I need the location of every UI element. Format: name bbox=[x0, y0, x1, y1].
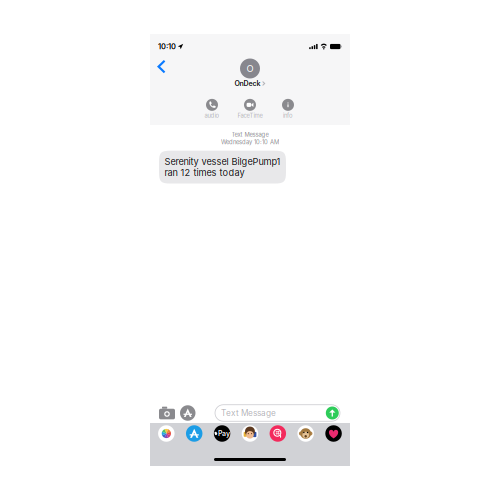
button[interactable]: Back bbox=[150, 51, 174, 82]
staticText: info bbox=[283, 112, 293, 119]
staticText: O bbox=[246, 63, 253, 74]
staticText: audio bbox=[204, 112, 219, 119]
button[interactable]: info bbox=[269, 99, 307, 118]
staticText: Wednesday 10:10 AM bbox=[221, 139, 279, 146]
button[interactable]: Send bbox=[326, 406, 339, 419]
button[interactable]: App Store bbox=[180, 423, 208, 444]
button[interactable]: Stickers bbox=[292, 423, 320, 444]
staticText: Serenity vessel BilgePump1 ran 12 times … bbox=[164, 156, 280, 178]
button[interactable]: Apple Pay bbox=[208, 423, 236, 444]
staticText: FaceTime bbox=[237, 112, 262, 119]
staticText: 10:10 bbox=[158, 42, 176, 51]
button[interactable]: Memoji bbox=[236, 423, 264, 444]
button[interactable]: O bbox=[235, 58, 265, 86]
button[interactable]: FaceTime bbox=[231, 99, 269, 118]
button[interactable]: Digital Touch bbox=[320, 423, 347, 444]
staticText: OnDeck bbox=[235, 79, 261, 88]
staticText: Text Message bbox=[231, 131, 268, 138]
button[interactable]: Photos bbox=[152, 423, 180, 444]
staticText: Pay bbox=[218, 429, 230, 438]
button[interactable]: Take photo bbox=[159, 403, 175, 423]
button[interactable]: Images bbox=[264, 423, 292, 444]
button[interactable]: audio bbox=[193, 99, 231, 118]
button[interactable]: Browse apps bbox=[180, 403, 195, 423]
staticText: Text Message bbox=[221, 408, 276, 418]
